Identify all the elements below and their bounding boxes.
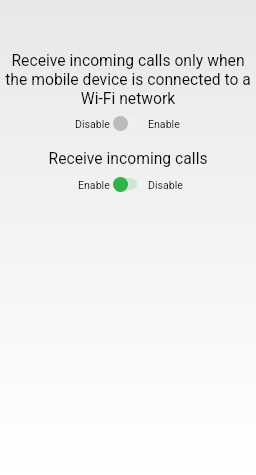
- staticText: Enable: [78, 179, 110, 191]
- staticText: Receive incoming calls: [0, 149, 256, 167]
- button[interactable]: Enable: [58, 175, 110, 195]
- staticText: Disable: [148, 179, 183, 191]
- button[interactable]: Enable: [144, 114, 196, 134]
- staticText: Enable: [148, 118, 180, 130]
- button[interactable]: Disable: [144, 175, 196, 195]
- staticText: Disable: [75, 118, 110, 130]
- button[interactable]: Receive incoming calls only over Wi-Fi: [113, 113, 137, 133]
- staticText: Receive incoming calls only when the mob…: [0, 51, 256, 108]
- button[interactable]: Receive incoming calls: [113, 174, 137, 194]
- button[interactable]: Disable: [58, 114, 110, 134]
